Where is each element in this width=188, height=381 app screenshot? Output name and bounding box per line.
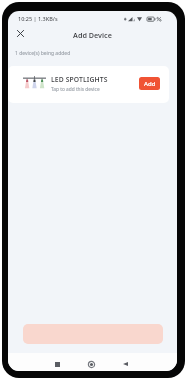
staticText: 1 device(s) being added — [15, 50, 71, 57]
button[interactable]: Add — [139, 77, 160, 90]
staticText: Tap to add this device — [51, 86, 100, 93]
staticText: 10:25 | 1.3KB/s — [18, 15, 58, 22]
staticText: Add — [144, 80, 156, 88]
button[interactable]: Back — [116, 355, 134, 371]
button[interactable] — [23, 324, 163, 344]
button[interactable]: Close — [12, 25, 28, 41]
button[interactable]: Home — [82, 355, 100, 371]
button[interactable]: LED SPOTLIGHTS — [8, 66, 169, 103]
staticText: LED SPOTLIGHTS — [51, 75, 108, 84]
staticText: Add Device — [73, 30, 112, 40]
button[interactable]: Recent apps — [48, 355, 66, 371]
